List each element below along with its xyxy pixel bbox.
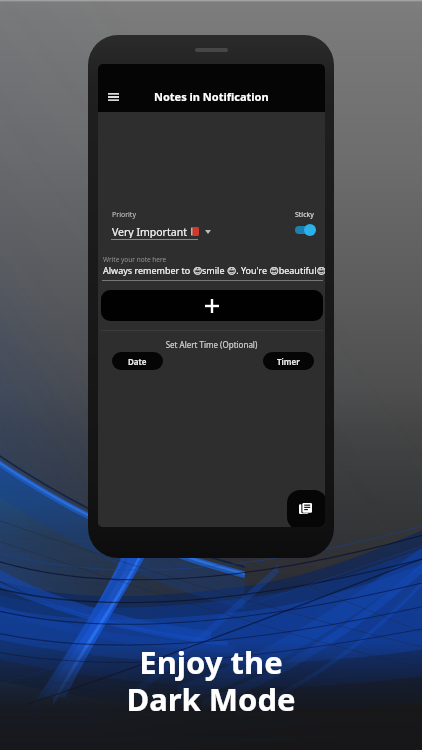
button[interactable]: Timer bbox=[263, 352, 314, 370]
staticText: Set Alert Time (Optional) bbox=[98, 339, 325, 350]
staticText: Enjoy the Dark Mode bbox=[0, 641, 422, 720]
staticText: Priority bbox=[112, 210, 136, 220]
button[interactable]: Add note bbox=[101, 290, 323, 321]
staticText: Sticky bbox=[295, 210, 314, 220]
staticText: Date bbox=[128, 356, 147, 367]
staticText: Notes in Notification bbox=[154, 89, 269, 104]
button[interactable]: Menu bbox=[101, 87, 125, 107]
button[interactable]: Very Important bbox=[112, 225, 211, 238]
staticText: Always remember to 😊smile 😊. You're 😊bea… bbox=[103, 264, 325, 276]
button[interactable]: Date bbox=[112, 352, 163, 370]
staticText: Timer bbox=[277, 356, 300, 367]
button[interactable]: Notes list bbox=[287, 490, 325, 527]
button[interactable]: Sticky toggle bbox=[294, 223, 317, 237]
staticText: Write your note here bbox=[103, 255, 167, 264]
staticText: Very Important bbox=[112, 225, 187, 238]
